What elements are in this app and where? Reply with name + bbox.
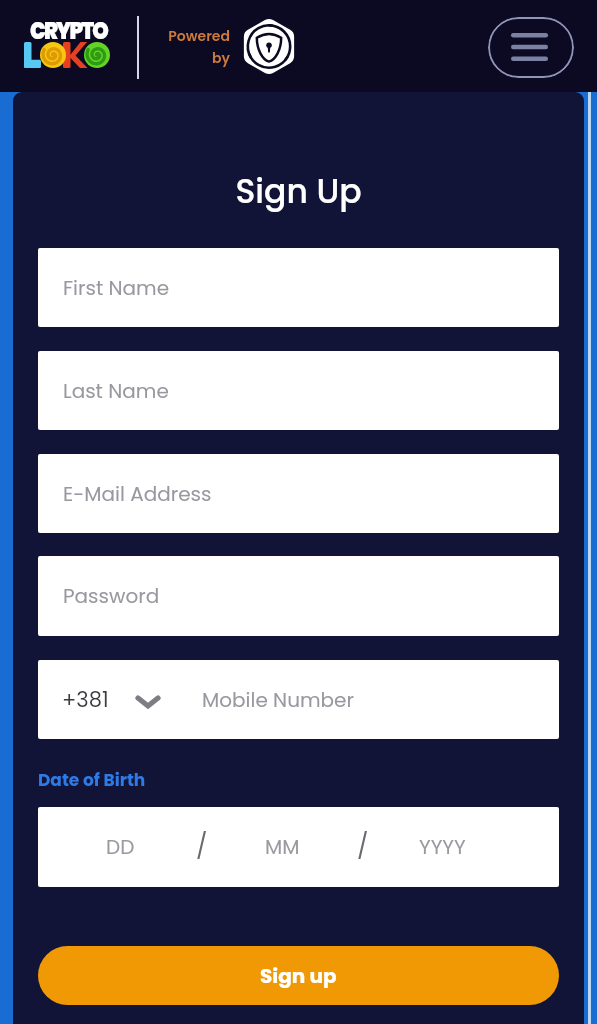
staticText: / <box>357 830 369 864</box>
button[interactable]: Date of Birth <box>38 768 146 792</box>
button[interactable]: DD <box>38 807 559 887</box>
staticText: DD <box>106 833 135 861</box>
staticText: YYYY <box>419 833 466 861</box>
button[interactable]: Crypto Loko <box>22 13 116 79</box>
staticText: E-Mail Address <box>63 480 212 508</box>
button[interactable]: Menu <box>488 17 574 78</box>
button[interactable]: Password <box>38 556 559 636</box>
staticText: Date of Birth <box>38 768 146 792</box>
staticText: Sign up <box>260 962 337 990</box>
button[interactable]: First Name <box>38 248 559 327</box>
staticText: Powered by <box>155 26 230 68</box>
button[interactable]: Last Name <box>38 351 559 430</box>
staticText: MM <box>265 833 300 861</box>
staticText: First Name <box>63 274 170 302</box>
staticText: / <box>196 830 208 864</box>
staticText: +381 <box>62 685 109 714</box>
button[interactable]: E-Mail Address <box>38 454 559 533</box>
staticText: Mobile Number <box>202 686 354 714</box>
button[interactable]: +381 <box>38 660 559 739</box>
button[interactable]: Select country code <box>134 694 162 710</box>
staticText: Last Name <box>63 377 169 405</box>
staticText: Password <box>63 582 160 610</box>
staticText: Sign Up <box>0 168 597 214</box>
button[interactable]: Sign up <box>38 946 559 1005</box>
staticText: CRYPTO <box>30 14 107 48</box>
